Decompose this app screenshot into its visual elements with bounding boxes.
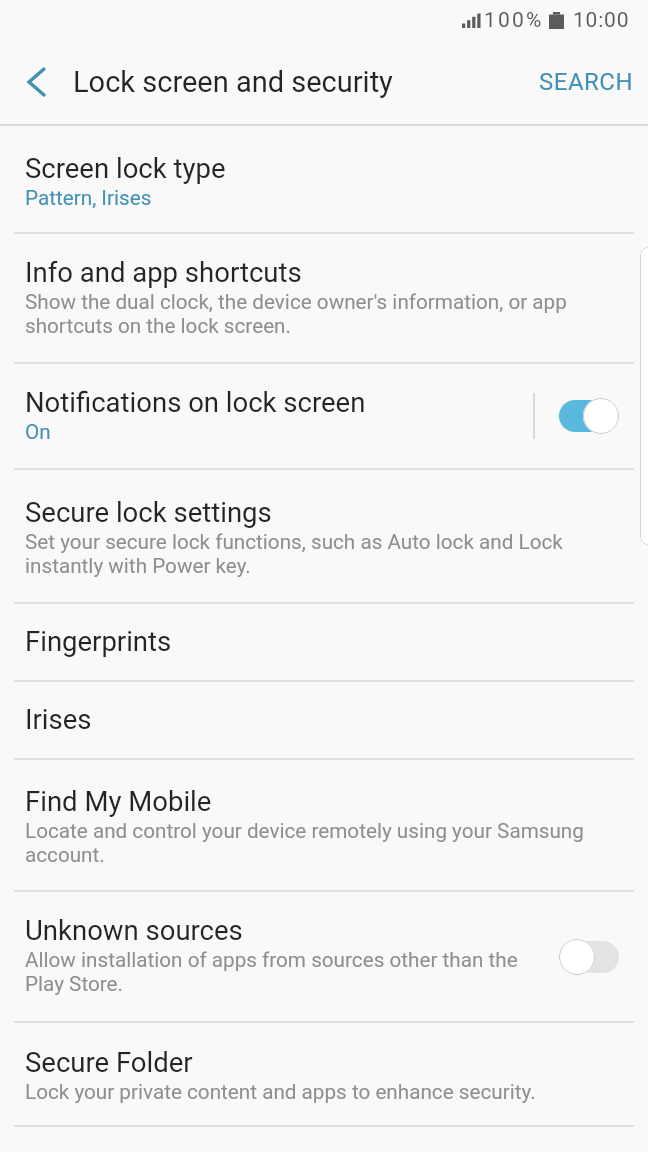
- staticText: instantly with Power key.: [25, 554, 251, 578]
- staticText: Fingerprints: [25, 625, 172, 657]
- staticText: Notifications on lock screen: [25, 386, 366, 418]
- button[interactable]: Unknown sources: [0, 892, 648, 1021]
- staticText: shortcuts on the lock screen.: [25, 314, 291, 338]
- staticText: Set your secure lock functions, such as …: [25, 530, 563, 554]
- staticText: Allow installation of apps from sources …: [25, 948, 518, 972]
- button[interactable]: [535, 364, 648, 468]
- staticText: Pattern, Irises: [25, 186, 152, 210]
- button[interactable]: Info and app shortcuts: [0, 234, 648, 362]
- button[interactable]: SEARCH: [539, 40, 648, 124]
- button[interactable]: Secure lock settings: [0, 470, 648, 602]
- staticText: Secure Folder: [25, 1046, 193, 1078]
- staticText: Locate and control your device remotely …: [25, 819, 584, 843]
- staticText: Screen lock type: [25, 152, 226, 184]
- button[interactable]: Secure Folder: [0, 1023, 648, 1125]
- staticText: On: [25, 420, 51, 444]
- button[interactable]: [0, 50, 64, 114]
- button[interactable]: Notifications on lock screen: [0, 364, 533, 468]
- staticText: Lock your private content and apps to en…: [25, 1080, 536, 1104]
- button[interactable]: Find My Mobile: [0, 760, 648, 890]
- staticText: Find My Mobile: [25, 785, 212, 817]
- button[interactable]: Irises: [0, 682, 648, 758]
- staticText: Info and app shortcuts: [25, 256, 302, 288]
- button[interactable]: Screen lock type: [0, 126, 648, 232]
- staticText: SEARCH: [539, 68, 634, 96]
- staticText: Play Store.: [25, 972, 123, 996]
- staticText: Show the dual clock, the device owner's …: [25, 290, 567, 314]
- button[interactable]: Fingerprints: [0, 604, 648, 680]
- staticText: account.: [25, 843, 105, 867]
- staticText: 10:00: [573, 8, 630, 33]
- staticText: Irises: [25, 703, 92, 735]
- staticText: Lock screen and security: [73, 65, 393, 99]
- staticText: Unknown sources: [25, 914, 243, 946]
- staticText: 100%: [484, 8, 544, 33]
- staticText: Secure lock settings: [25, 496, 272, 528]
